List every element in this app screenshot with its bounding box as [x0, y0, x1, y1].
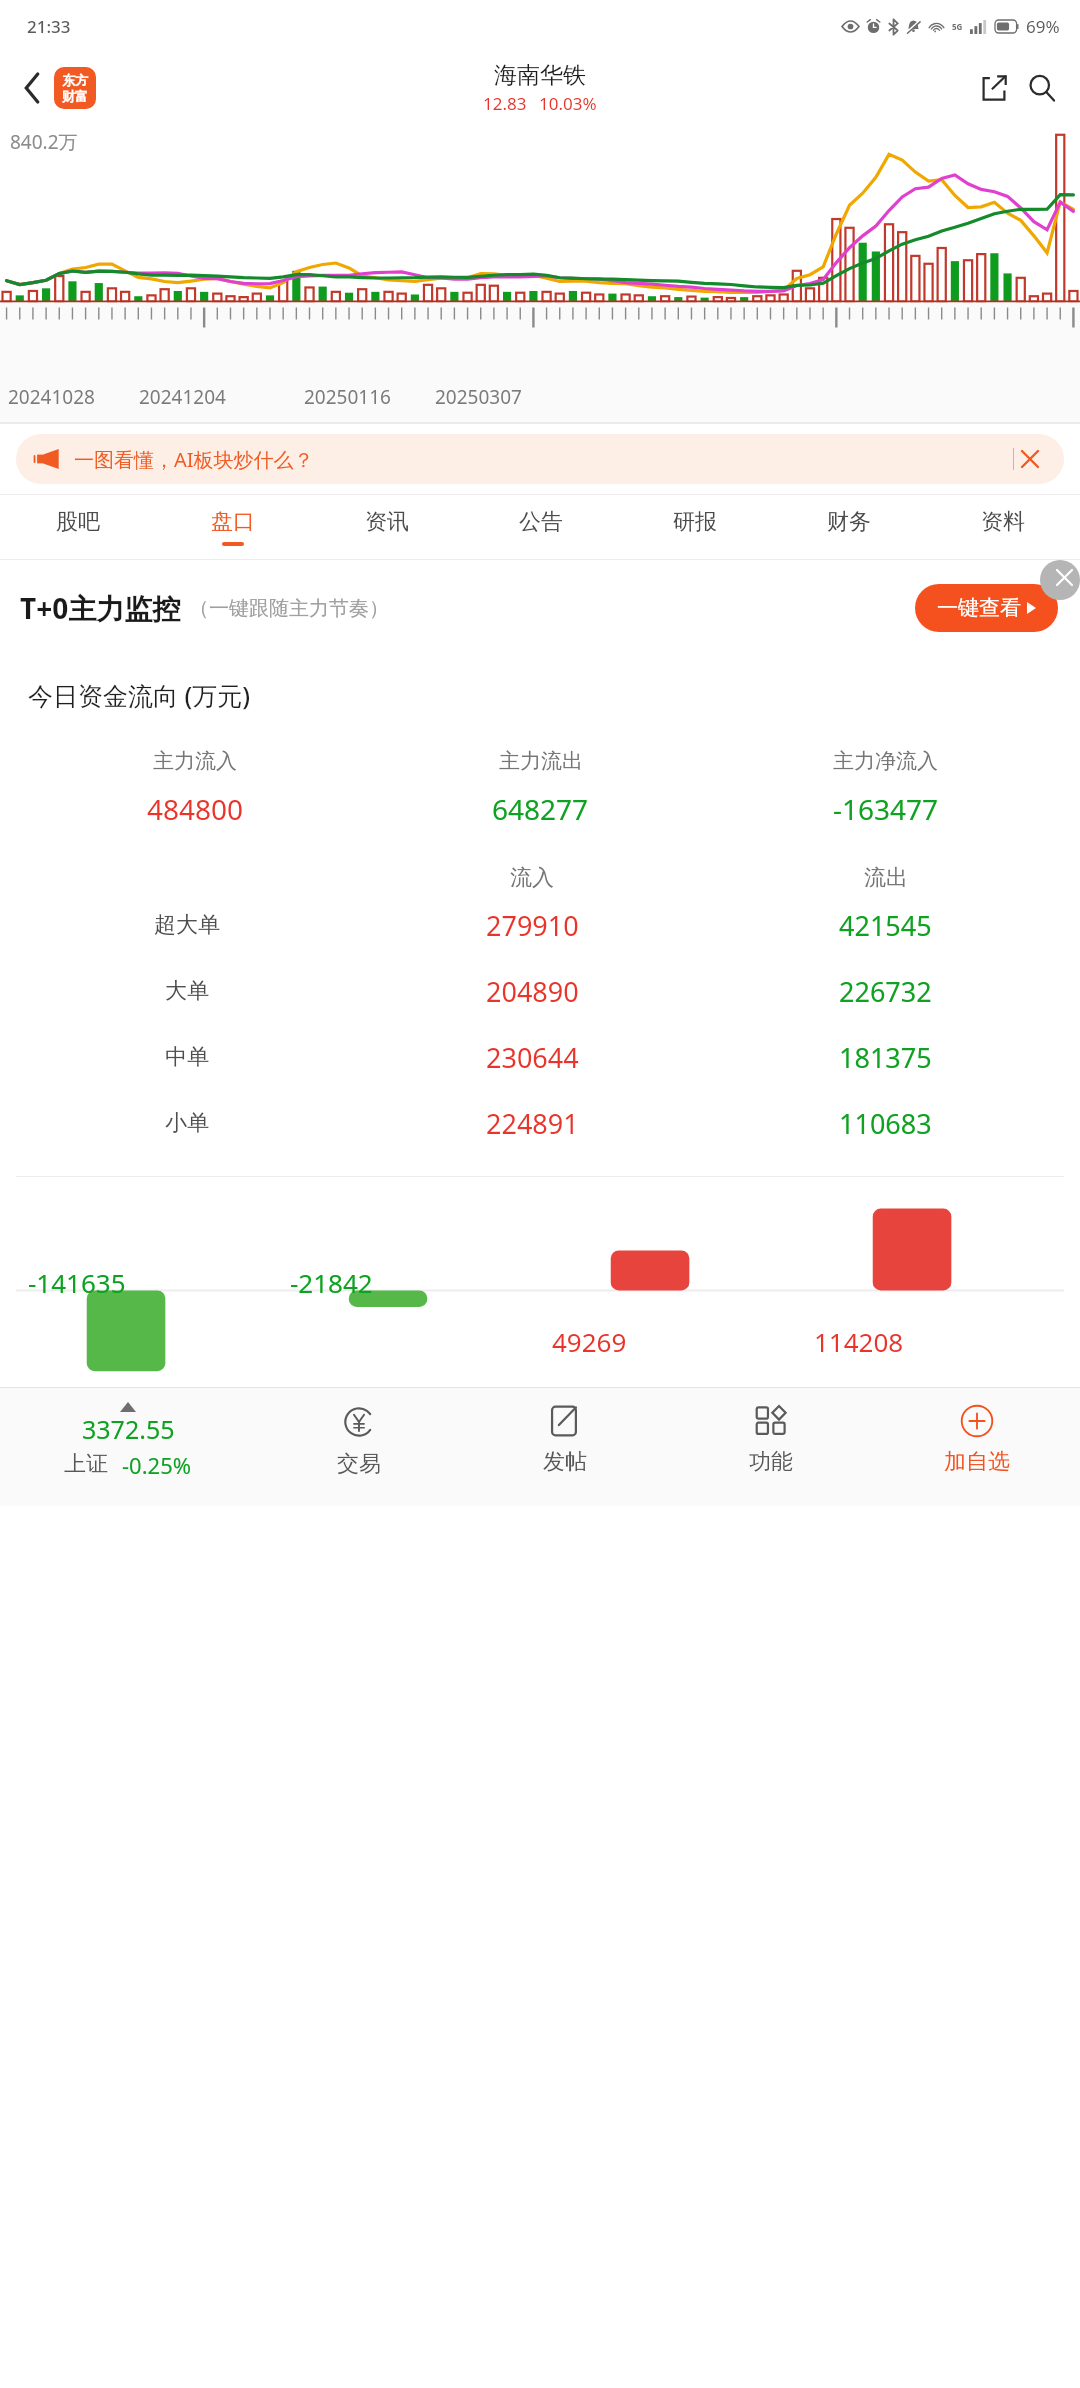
button[interactable]: 研报 — [618, 495, 772, 559]
button[interactable]: 公告 — [464, 495, 618, 559]
button[interactable]: 交易 — [256, 1388, 462, 1506]
staticText: 114208 — [814, 1324, 904, 1359]
staticText: 648277 — [492, 790, 589, 828]
staticText: 股吧 — [56, 508, 100, 536]
staticText: 10.03% — [539, 92, 597, 115]
staticText: 49269 — [552, 1324, 627, 1359]
staticText: 发帖 — [543, 1448, 587, 1476]
staticText: 资讯 — [365, 508, 409, 536]
staticText: 主力净流入 — [833, 748, 938, 774]
staticText: 279910 — [486, 907, 579, 944]
staticText: -141635 — [28, 1265, 126, 1300]
button[interactable]: 功能 — [668, 1388, 874, 1506]
button[interactable]: 发帖 — [462, 1388, 668, 1506]
staticText: 大单 — [165, 977, 209, 1005]
staticText: 12.83 — [483, 92, 527, 115]
button[interactable]: 一图看懂，AI板块炒什么？ — [16, 434, 1064, 484]
button[interactable]: 财务 — [772, 495, 926, 559]
staticText: 财富 — [62, 88, 88, 104]
staticText: 加自选 — [944, 1448, 1010, 1476]
staticText: 流入 — [510, 864, 554, 892]
button[interactable]: T+0主力监控 — [0, 560, 1080, 656]
staticText: 230644 — [486, 1039, 579, 1076]
staticText: 超大单 — [154, 911, 220, 939]
button[interactable]: 大单 — [22, 958, 1058, 1024]
staticText: 一图看懂，AI板块炒什么？ — [74, 446, 314, 473]
staticText: 资料 — [981, 508, 1025, 536]
staticText: 公告 — [519, 508, 563, 536]
button[interactable]: 资讯 — [310, 495, 464, 559]
staticText: -0.25% — [122, 1450, 192, 1480]
staticText: 盘口 — [211, 508, 255, 536]
button[interactable]: 中单 — [22, 1024, 1058, 1090]
staticText: 中单 — [165, 1043, 209, 1071]
button[interactable]: 股吧 — [0, 495, 155, 559]
staticText: 研报 — [673, 508, 717, 536]
staticText: 5G — [952, 21, 963, 32]
button[interactable]: East Money logo — [54, 67, 96, 109]
button[interactable]: 主力流入 — [22, 726, 1058, 850]
button[interactable]: 一键查看 — [915, 584, 1058, 632]
staticText: 69% — [1026, 15, 1060, 38]
staticText: 226732 — [839, 973, 932, 1010]
staticText: 海南华铁 — [494, 61, 586, 90]
staticText: 财务 — [827, 508, 871, 536]
button[interactable]: 超大单 — [22, 892, 1058, 958]
staticText: （一键跟随主力节奏） — [189, 596, 389, 621]
staticText: 20241028 — [8, 384, 95, 410]
staticText: 小单 — [165, 1109, 209, 1137]
button[interactable]: 资料 — [926, 495, 1080, 559]
staticText: 224891 — [486, 1105, 579, 1142]
staticText: 421545 — [839, 907, 932, 944]
button[interactable]: Close ad — [1040, 560, 1080, 600]
staticText: 今日资金流向 (万元) — [28, 678, 251, 712]
staticText: 20250307 — [435, 384, 522, 410]
staticText: 主力流入 — [153, 748, 237, 774]
button[interactable]: Close banner — [1014, 443, 1046, 475]
staticText: -21842 — [290, 1265, 373, 1300]
staticText: 交易 — [337, 1450, 381, 1478]
staticText: 一键查看 — [937, 595, 1021, 621]
staticText: 东方 — [62, 72, 88, 88]
staticText: 181375 — [839, 1039, 932, 1076]
button[interactable]: Share — [970, 64, 1018, 112]
staticText: 204890 — [486, 973, 579, 1010]
staticText: 484800 — [147, 790, 244, 828]
staticText: 主力流出 — [499, 748, 583, 774]
staticText: 840.2万 — [10, 129, 78, 155]
button[interactable]: 小单 — [22, 1090, 1058, 1156]
staticText: 功能 — [749, 1448, 793, 1476]
staticText: 20241204 — [139, 384, 226, 410]
button[interactable]: 加自选 — [874, 1388, 1080, 1506]
staticText: 20250116 — [304, 384, 391, 410]
button[interactable]: Search — [1018, 64, 1066, 112]
button[interactable]: 盘口 — [155, 495, 310, 559]
button[interactable]: Back — [10, 66, 54, 110]
staticText: 110683 — [839, 1105, 932, 1142]
staticText: 流出 — [864, 864, 908, 892]
staticText: -163477 — [833, 790, 939, 828]
staticText: 3372.55 — [82, 1412, 175, 1446]
staticText: 上证 — [64, 1450, 108, 1478]
staticText: 21:33 — [27, 15, 71, 38]
staticText: T+0主力监控 — [20, 589, 181, 627]
button[interactable]: 3372.55 — [0, 1388, 256, 1506]
